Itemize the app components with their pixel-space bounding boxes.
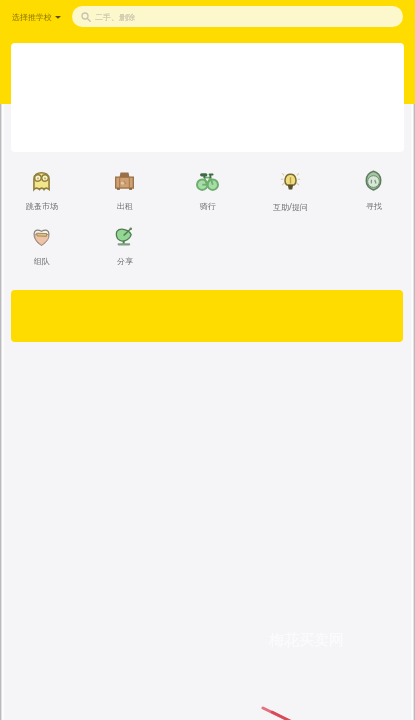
staticText: 骑行 bbox=[200, 201, 216, 211]
button[interactable]: 分享 bbox=[83, 225, 166, 266]
staticText: 出租 bbox=[117, 201, 133, 211]
button[interactable]: 互助/提问 bbox=[249, 170, 332, 212]
staticText: 分享 bbox=[117, 256, 133, 266]
button[interactable]: 组队 bbox=[0, 225, 83, 266]
button[interactable]: Promotion banner bbox=[11, 290, 403, 342]
button[interactable]: 出租 bbox=[83, 170, 166, 211]
staticText: 组队 bbox=[34, 256, 50, 266]
button[interactable]: 选择推学校 bbox=[11, 6, 62, 28]
staticText: 二手、删除 bbox=[95, 12, 135, 22]
button[interactable]: 跳蚤市场 bbox=[0, 170, 83, 211]
button[interactable]: 骑行 bbox=[166, 170, 249, 211]
staticText: 跳蚤市场 bbox=[26, 201, 58, 211]
button[interactable]: 二手、删除 bbox=[72, 6, 403, 27]
staticText: 互助/提问 bbox=[273, 201, 308, 212]
staticText: 寻找 bbox=[366, 201, 382, 211]
staticText: 选择推学校 bbox=[12, 12, 52, 22]
button[interactable]: 寻找 bbox=[332, 170, 415, 211]
